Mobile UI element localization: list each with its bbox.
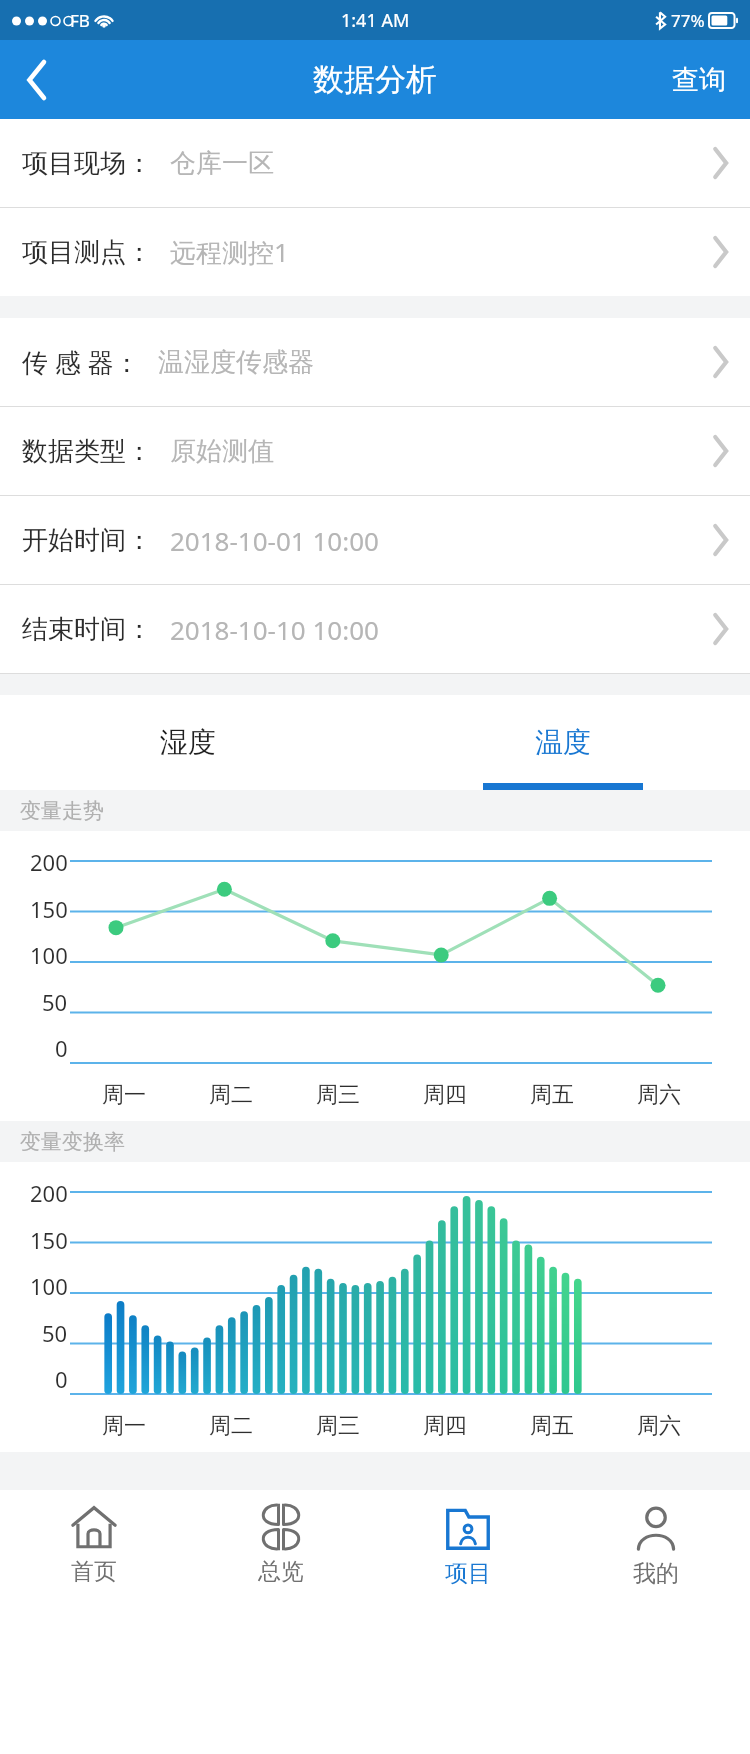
staticText: 周一 (102, 1081, 146, 1109)
staticText: 周六 (637, 1081, 681, 1109)
staticText: 0 (55, 1033, 68, 1063)
staticText: 周四 (423, 1081, 467, 1109)
staticText: 远程测控1 (170, 234, 289, 270)
staticText: 开始时间： (22, 524, 152, 557)
staticText: 0 (55, 1364, 68, 1394)
staticText: 湿度 (160, 725, 216, 760)
button[interactable]: 查询 (648, 40, 750, 119)
staticText: 周四 (423, 1412, 467, 1440)
staticText: 结束时间： (22, 613, 152, 646)
staticText: 200 (30, 1178, 68, 1208)
staticText: 周六 (637, 1412, 681, 1440)
staticText: 变量走势 (20, 798, 104, 824)
staticText: 2018-10-10 10:00 (170, 612, 379, 647)
staticText: 变量变换率 (20, 1129, 125, 1155)
staticText: 项目测点： (22, 236, 152, 269)
staticText: 周一 (102, 1412, 146, 1440)
staticText: 50 (42, 1318, 68, 1348)
staticText: 温湿度传感器 (158, 346, 314, 379)
staticText: 周五 (530, 1412, 574, 1440)
button[interactable]: 数据类型： (0, 407, 750, 495)
staticText: 周三 (316, 1081, 360, 1109)
staticText: 1:41 AM (341, 8, 410, 33)
staticText: 传 感 器： (22, 344, 140, 380)
staticText: 总览 (258, 1557, 304, 1586)
staticText: 我的 (633, 1559, 679, 1588)
staticText: 项目现场： (22, 147, 152, 180)
button[interactable]: 湿度 (0, 695, 375, 790)
button[interactable]: 首页 (0, 1490, 187, 1610)
button[interactable]: Back (0, 40, 74, 119)
button[interactable]: 传 感 器： (0, 318, 750, 406)
staticText: 数据类型： (22, 435, 152, 468)
staticText: 150 (30, 1225, 68, 1255)
staticText: 原始测值 (170, 435, 274, 468)
staticText: 仓库一区 (170, 147, 274, 180)
staticText: 100 (30, 940, 68, 970)
button[interactable]: 项目现场： (0, 119, 750, 207)
staticText: FB (70, 9, 90, 32)
staticText: 周五 (530, 1081, 574, 1109)
staticText: 项目 (445, 1559, 491, 1588)
button[interactable]: 开始时间： (0, 496, 750, 584)
staticText: 150 (30, 894, 68, 924)
staticText: 首页 (71, 1557, 117, 1586)
staticText: 100 (30, 1271, 68, 1301)
button[interactable]: 温度 (375, 695, 750, 790)
button[interactable]: 结束时间： (0, 585, 750, 673)
staticText: 温度 (535, 725, 591, 760)
staticText: 查询 (672, 63, 726, 97)
staticText: 77% (671, 9, 705, 32)
staticText: 200 (30, 847, 68, 877)
staticText: 周二 (209, 1081, 253, 1109)
staticText: 50 (42, 987, 68, 1017)
staticText: 2018-10-01 10:00 (170, 523, 379, 558)
staticText: 周三 (316, 1412, 360, 1440)
button[interactable]: 项目测点： (0, 208, 750, 296)
staticText: 数据分析 (313, 60, 437, 99)
button[interactable]: 我的 (562, 1490, 750, 1610)
button[interactable]: 项目 (374, 1490, 562, 1610)
button[interactable]: 总览 (187, 1490, 374, 1610)
staticText: 周二 (209, 1412, 253, 1440)
